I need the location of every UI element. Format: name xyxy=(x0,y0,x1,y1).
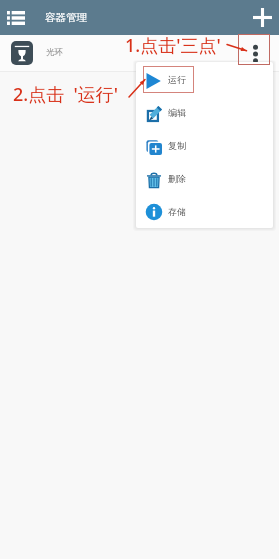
staticText: 2.点击 '运行' xyxy=(13,82,119,107)
staticText: 删除 xyxy=(168,173,186,184)
staticText: 复制 xyxy=(168,140,186,151)
button[interactable]: Add xyxy=(246,0,279,35)
button[interactable]: 光环 xyxy=(0,35,279,71)
button[interactable]: 运行 xyxy=(136,64,273,97)
button[interactable]: More options xyxy=(244,42,267,65)
button[interactable]: 复制 xyxy=(136,130,273,163)
staticText: 光环 xyxy=(46,47,63,58)
button[interactable]: Menu xyxy=(0,0,31,35)
button[interactable]: 编辑 xyxy=(136,97,273,130)
staticText: 编辑 xyxy=(168,107,186,118)
button[interactable]: 删除 xyxy=(136,163,273,196)
staticText: 容器管理 xyxy=(45,11,87,24)
staticText: 1.点击'三点' xyxy=(125,33,221,58)
staticText: 存储 xyxy=(168,206,186,217)
staticText: 运行 xyxy=(168,74,186,85)
button[interactable]: 存储 xyxy=(136,196,273,228)
